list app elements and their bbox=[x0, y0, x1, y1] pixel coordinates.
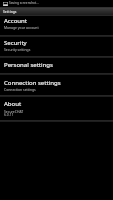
staticText: SecureCHAT bbox=[4, 109, 24, 114]
button[interactable]: About bbox=[0, 95, 113, 120]
button[interactable]: Personal settings bbox=[0, 57, 113, 73]
button[interactable]: Connection settings bbox=[0, 73, 113, 95]
staticText: Connection settings bbox=[4, 79, 61, 87]
button[interactable]: Security bbox=[0, 36, 113, 56]
staticText: Security settings bbox=[4, 47, 31, 52]
other: Screenshot saved bbox=[3, 2, 8, 6]
staticText: Saving screenshot... bbox=[9, 1, 39, 5]
staticText: About bbox=[4, 100, 22, 108]
staticText: Manage your account bbox=[4, 25, 39, 30]
staticText: Personal settings bbox=[4, 61, 53, 69]
staticText: Account bbox=[4, 17, 27, 25]
staticText: Connection settings bbox=[4, 87, 36, 92]
button[interactable]: Account bbox=[0, 15, 113, 35]
staticText: Settings bbox=[3, 9, 17, 13]
staticText: 6.0.11 bbox=[4, 112, 14, 117]
staticText: Security bbox=[4, 39, 27, 47]
